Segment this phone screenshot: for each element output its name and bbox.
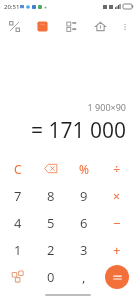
button[interactable]: Expand: [0, 13, 28, 40]
staticText: 9: [80, 187, 88, 205]
staticText: ,: [82, 268, 86, 286]
staticText: 8: [47, 187, 55, 205]
button[interactable]: %: [67, 155, 100, 182]
button[interactable]: 0: [34, 263, 67, 290]
staticText: ×: [113, 188, 120, 204]
staticText: 20:51: [4, 3, 20, 11]
button[interactable]: Backspace: [34, 155, 67, 182]
staticText: +: [113, 241, 121, 259]
button[interactable]: 7: [2, 182, 34, 209]
staticText: = 171 000: [30, 116, 126, 145]
button[interactable]: 6: [67, 209, 100, 236]
button[interactable]: 3: [67, 236, 100, 263]
button[interactable]: 8: [34, 182, 67, 209]
button[interactable]: 4: [2, 209, 34, 236]
staticText: 1 900×90: [87, 101, 126, 113]
staticText: 6: [80, 214, 88, 232]
button[interactable]: ,: [67, 263, 100, 290]
button[interactable]: ÷: [100, 155, 133, 182]
staticText: 1: [14, 241, 22, 259]
staticText: ÷: [113, 160, 121, 178]
button[interactable]: −: [100, 209, 133, 236]
staticText: C: [14, 161, 22, 177]
button[interactable]: Mortgage: [86, 13, 115, 40]
button[interactable]: 9: [67, 182, 100, 209]
staticText: −: [113, 214, 121, 232]
button[interactable]: C: [2, 155, 34, 182]
staticText: 7: [14, 187, 22, 205]
staticText: 4: [14, 214, 22, 232]
button[interactable]: 5: [34, 209, 67, 236]
staticText: 2: [47, 241, 55, 259]
staticText: 3: [80, 241, 88, 259]
button[interactable]: +: [100, 236, 133, 263]
button[interactable]: Unit converter: [57, 13, 86, 40]
button[interactable]: ×: [100, 182, 133, 209]
staticText: 5: [47, 214, 55, 232]
button[interactable]: Equals: [105, 265, 129, 289]
button[interactable]: Calculator: [28, 13, 57, 40]
button[interactable]: More options: [115, 13, 135, 40]
button[interactable]: 2: [34, 236, 67, 263]
staticText: %: [79, 161, 89, 177]
button[interactable]: Unit conversion: [2, 263, 34, 290]
staticText: 0: [47, 268, 55, 286]
button[interactable]: 1: [2, 236, 34, 263]
